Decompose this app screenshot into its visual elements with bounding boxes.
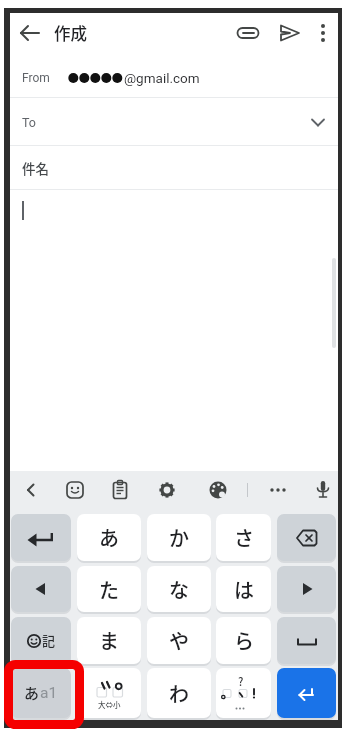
button[interactable]	[11, 514, 71, 561]
staticText: か	[169, 523, 189, 552]
staticText: a1	[40, 684, 58, 702]
button[interactable]	[277, 668, 336, 718]
staticText: さ	[234, 523, 254, 552]
staticText: あ	[24, 682, 40, 704]
button[interactable]: な	[147, 566, 211, 612]
button[interactable]	[10, 146, 338, 189]
staticText: 件名	[22, 158, 49, 178]
button[interactable]: あ	[11, 668, 71, 718]
staticText: To	[22, 115, 36, 130]
button[interactable]: あ	[77, 514, 141, 561]
button[interactable]	[277, 617, 336, 664]
button[interactable]	[18, 477, 44, 503]
staticText: 記	[42, 631, 56, 650]
staticText: @gmail.com	[124, 70, 200, 86]
button[interactable]: か	[147, 514, 211, 561]
button[interactable]	[234, 19, 262, 47]
staticText: わ	[169, 679, 189, 708]
button[interactable]	[10, 98, 338, 145]
staticText: は	[234, 575, 254, 604]
staticText: や	[169, 626, 189, 655]
button[interactable]	[276, 19, 304, 47]
button[interactable]: た	[77, 566, 141, 612]
button[interactable]	[277, 514, 336, 561]
staticText: ?	[238, 673, 244, 686]
staticText: 作成	[54, 21, 87, 45]
button[interactable]	[154, 477, 180, 503]
button[interactable]: 記	[11, 617, 71, 664]
button[interactable]	[107, 477, 133, 503]
staticText: た	[99, 575, 119, 604]
button[interactable]: ?	[216, 668, 271, 718]
button[interactable]: は	[216, 566, 271, 612]
button[interactable]	[310, 19, 336, 47]
staticText: あ	[99, 523, 119, 552]
button[interactable]	[205, 477, 231, 503]
button[interactable]	[16, 19, 44, 47]
button[interactable]	[265, 477, 291, 503]
button[interactable]	[310, 477, 336, 503]
button[interactable]: わ	[147, 668, 211, 718]
staticText: From	[22, 71, 50, 85]
button[interactable]: 大⇔小	[77, 668, 141, 718]
button[interactable]	[62, 477, 88, 503]
staticText: な	[169, 575, 189, 604]
button[interactable]: さ	[216, 514, 271, 561]
staticText: 大⇔小	[98, 699, 121, 710]
button[interactable]: ま	[77, 617, 141, 664]
button[interactable]	[11, 566, 71, 612]
button[interactable]	[277, 566, 336, 612]
staticText: ま	[99, 626, 119, 655]
button[interactable]: ら	[216, 617, 271, 664]
button[interactable]: や	[147, 617, 211, 664]
staticText: ら	[234, 626, 254, 655]
